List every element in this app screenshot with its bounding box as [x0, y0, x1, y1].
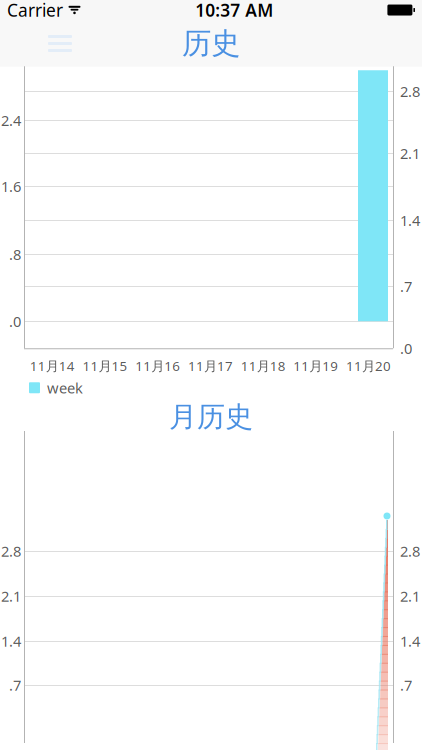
- staticText: 11月16: [135, 357, 180, 375]
- staticText: 1.4: [400, 210, 420, 230]
- staticText: 10:37 AM: [195, 0, 273, 21]
- staticText: .7: [9, 675, 21, 695]
- staticText: 1.6: [1, 176, 21, 196]
- staticText: .8: [9, 244, 21, 264]
- staticText: 11月17: [188, 357, 233, 375]
- staticText: .0: [400, 338, 412, 358]
- staticText: 2.8: [400, 541, 420, 561]
- staticText: 2.1: [400, 586, 420, 606]
- staticText: .7: [400, 276, 412, 296]
- staticText: Carrier: [7, 0, 63, 21]
- staticText: 2.8: [400, 81, 420, 101]
- staticText: 月历史: [169, 400, 253, 434]
- staticText: week: [47, 378, 83, 397]
- button[interactable]: Menu: [38, 21, 82, 65]
- staticText: 11月14: [30, 357, 75, 375]
- staticText: 1.4: [400, 631, 420, 651]
- staticText: 11月20: [346, 357, 391, 375]
- staticText: 2.4: [1, 110, 21, 130]
- staticText: 11月19: [293, 357, 338, 375]
- staticText: 11月15: [83, 357, 128, 375]
- staticText: 历史: [182, 25, 240, 61]
- staticText: .7: [400, 675, 412, 695]
- staticText: .0: [9, 311, 21, 331]
- staticText: 11月18: [241, 357, 286, 375]
- staticText: 1.4: [1, 631, 21, 651]
- staticText: 2.8: [1, 541, 21, 561]
- staticText: 2.1: [400, 143, 420, 163]
- staticText: 2.1: [1, 586, 21, 606]
